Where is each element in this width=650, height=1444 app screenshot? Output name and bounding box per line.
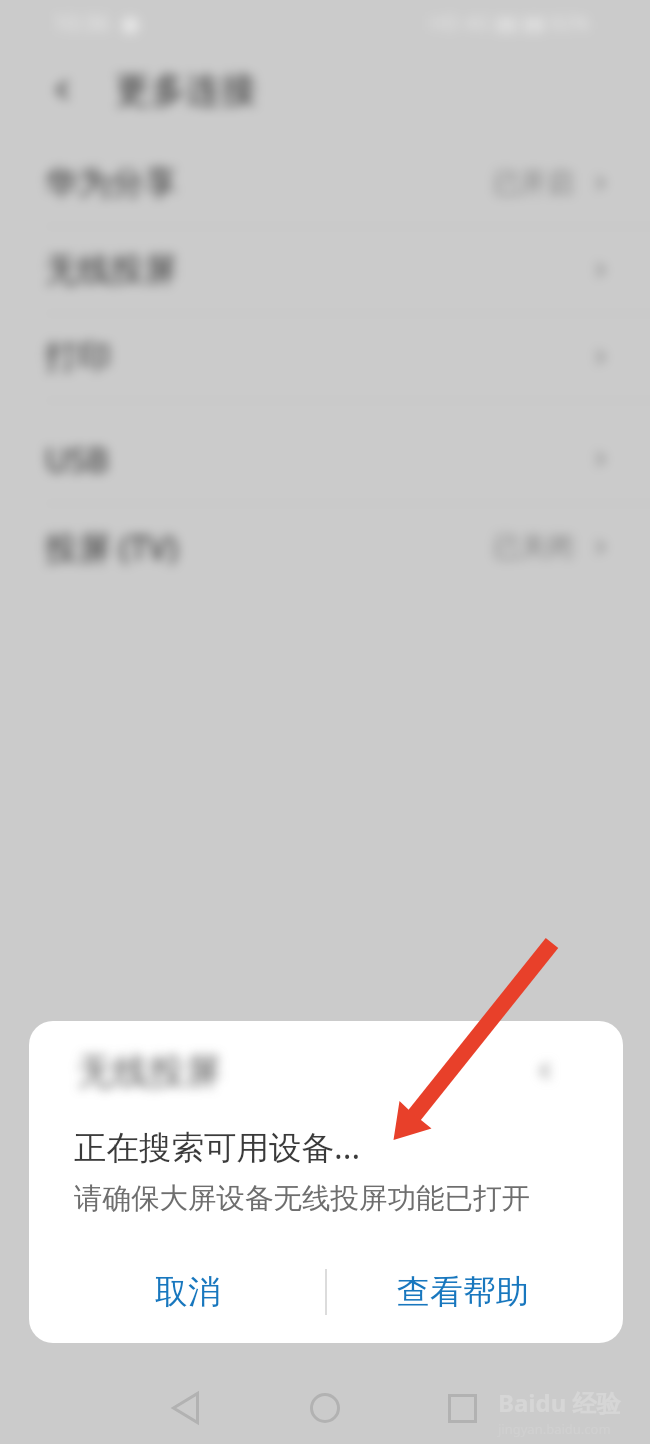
- staticText: 投屏 (TV): [45, 525, 178, 570]
- button[interactable]: 查看帮助: [327, 1244, 623, 1339]
- button[interactable]: Back: [46, 73, 80, 107]
- button[interactable]: 华为分享: [0, 140, 650, 226]
- button[interactable]: 无线投屏: [29, 1021, 623, 1121]
- button[interactable]: Back: [152, 1378, 218, 1438]
- button[interactable]: Home: [292, 1378, 358, 1438]
- button[interactable]: 投屏 (TV): [0, 504, 650, 590]
- staticText: 请确保大屏设备无线投屏功能已打开: [74, 1181, 530, 1217]
- button[interactable]: 无线投屏: [0, 227, 650, 313]
- staticText: Baidu 经验: [498, 1386, 621, 1419]
- staticText: 10:36 ●: [53, 7, 140, 37]
- staticText: 华为分享: [45, 162, 177, 204]
- button[interactable]: Recent apps: [429, 1378, 495, 1438]
- staticText: HD 4G ▮▮ ▮▮ 82%: [430, 9, 590, 36]
- button[interactable]: 打印: [0, 314, 650, 400]
- other: Collapse: [529, 1054, 563, 1088]
- staticText: 查看帮助: [397, 1271, 529, 1313]
- staticText: 打印: [45, 336, 111, 378]
- staticText: USB: [45, 437, 109, 482]
- staticText: 更多连接: [115, 68, 257, 113]
- staticText: 无线投屏: [77, 1049, 221, 1094]
- staticText: 已关闭: [493, 530, 574, 564]
- staticText: 正在搜索可用设备...: [74, 1124, 361, 1168]
- button[interactable]: USB: [0, 415, 650, 503]
- staticText: 无线投屏: [45, 249, 177, 291]
- staticText: 取消: [155, 1271, 221, 1313]
- button[interactable]: 取消: [29, 1244, 325, 1339]
- staticText: 已开启: [493, 166, 574, 200]
